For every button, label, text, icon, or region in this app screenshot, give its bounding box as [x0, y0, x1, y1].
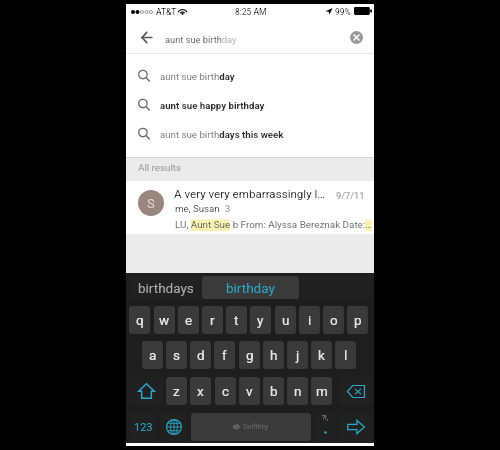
- button[interactable]: i: [299, 306, 320, 334]
- staticText: s: [173, 347, 180, 363]
- button[interactable]: h: [263, 341, 284, 369]
- staticText: h: [270, 347, 278, 363]
- staticText: l: [344, 347, 348, 363]
- staticText: aunt sue happy birthday: [160, 100, 265, 111]
- button[interactable]: q: [129, 306, 150, 334]
- staticText: j: [296, 347, 300, 363]
- button[interactable]: c: [215, 377, 236, 405]
- button[interactable]: aunt sue happy birthday: [126, 91, 374, 119]
- staticText: 9/7/11: [336, 190, 365, 201]
- button[interactable]: S: [126, 181, 374, 234]
- button[interactable]: f: [214, 341, 235, 369]
- button[interactable]: aunt sue birthdays this week: [126, 120, 374, 148]
- staticText: d: [197, 347, 205, 363]
- staticText: 99%: [335, 7, 351, 17]
- staticText: r: [210, 312, 215, 328]
- button[interactable]: d: [190, 341, 211, 369]
- staticText: q: [136, 312, 144, 328]
- staticText: u: [282, 312, 290, 328]
- button[interactable]: Shift: [129, 377, 163, 405]
- button[interactable]: Clear search: [339, 22, 373, 54]
- button[interactable]: m: [311, 377, 332, 405]
- button[interactable]: s: [166, 341, 187, 369]
- staticText: A very very embarrassingly l…: [174, 187, 326, 201]
- button[interactable]: y: [250, 306, 271, 334]
- button[interactable]: j: [287, 341, 308, 369]
- staticText: 123: [134, 421, 153, 434]
- staticText: c: [222, 383, 230, 399]
- button[interactable]: o: [323, 306, 344, 334]
- staticText: f: [222, 347, 227, 363]
- staticText: All results: [138, 162, 182, 173]
- staticText: y: [257, 312, 264, 328]
- button[interactable]: u: [275, 306, 296, 334]
- staticText: ?!,: [322, 414, 329, 422]
- button[interactable]: Backspace: [339, 377, 373, 405]
- button[interactable]: b: [263, 377, 284, 405]
- button[interactable]: z: [166, 377, 187, 405]
- staticText: m: [316, 383, 328, 399]
- button[interactable]: Punctuation: [315, 413, 335, 441]
- staticText: n: [294, 383, 302, 399]
- button[interactable]: a: [142, 341, 163, 369]
- staticText: x: [197, 383, 204, 399]
- staticText: aunt sue birthday: [165, 34, 237, 45]
- staticText: me, Susan: [175, 203, 220, 214]
- button[interactable]: e: [178, 306, 199, 334]
- staticText: z: [173, 383, 180, 399]
- button[interactable]: p: [347, 306, 368, 334]
- staticText: aunt sue birthdays this week: [160, 129, 284, 140]
- button[interactable]: l: [335, 341, 356, 369]
- staticText: v: [246, 383, 253, 399]
- staticText: p: [354, 312, 362, 328]
- staticText: birthday: [226, 280, 275, 296]
- staticText: o: [330, 312, 338, 328]
- staticText: 8:25 AM: [235, 7, 267, 17]
- staticText: LU, Aunt Sue b From: Alyssa Bereznak Dat…: [175, 219, 372, 231]
- button[interactable]: birthday: [202, 276, 299, 299]
- button[interactable]: birthdays: [130, 276, 202, 299]
- staticText: e: [185, 312, 193, 328]
- staticText: aunt sue birthday: [160, 71, 235, 82]
- button[interactable]: r: [202, 306, 223, 334]
- button[interactable]: x: [190, 377, 211, 405]
- staticText: S: [147, 196, 155, 211]
- button[interactable]: t: [226, 306, 247, 334]
- button[interactable]: 123: [130, 413, 156, 441]
- button[interactable]: n: [287, 377, 308, 405]
- button[interactable]: Enter: [339, 413, 373, 441]
- button[interactable]: g: [239, 341, 260, 369]
- button[interactable]: Space: [191, 413, 311, 441]
- button[interactable]: k: [311, 341, 332, 369]
- button[interactable]: aunt sue birthday: [126, 62, 374, 90]
- button[interactable]: w: [154, 306, 175, 334]
- button[interactable]: v: [239, 377, 260, 405]
- staticText: AT&T: [156, 7, 177, 17]
- staticText: i: [308, 312, 312, 328]
- staticText: a: [149, 347, 157, 363]
- staticText: w: [159, 312, 170, 328]
- staticText: g: [246, 347, 254, 363]
- staticText: birthdays: [138, 280, 194, 296]
- staticText: t: [234, 312, 239, 328]
- staticText: b: [270, 383, 278, 399]
- button[interactable]: Back: [135, 22, 157, 54]
- staticText: SwiftKey: [243, 423, 269, 431]
- staticText: k: [318, 347, 325, 363]
- staticText: 3: [225, 203, 231, 214]
- button[interactable]: Next keyboard: [160, 413, 187, 441]
